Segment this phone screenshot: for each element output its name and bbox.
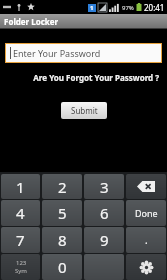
staticText: 8 [58,230,67,250]
button[interactable]: Submit [61,102,107,119]
staticText: 2 [58,177,67,197]
button[interactable]: 2 [42,174,82,199]
button[interactable]: 4 [1,200,40,226]
staticText: 5 [58,203,67,223]
staticText: 1 [90,4,94,12]
button[interactable]: Settings [126,254,166,280]
button[interactable]: 5 [42,200,82,226]
staticText: 6 [100,203,109,223]
staticText: Folder Locker [4,16,59,27]
button[interactable]: 1 [1,174,40,199]
button[interactable]: Space [84,254,124,280]
staticText: Done [135,207,158,219]
staticText: 123 [16,259,27,267]
button[interactable]: Enter Your Password [6,44,161,62]
staticText: 4 [16,203,25,223]
staticText: Sym [15,267,27,275]
button[interactable]: . [126,227,166,253]
staticText: 97% [122,4,134,12]
staticText: Enter Your Password [13,47,101,59]
button[interactable]: 123 [1,254,40,280]
staticText: 9 [100,230,109,250]
staticText: 7 [16,230,25,250]
button[interactable]: Backspace [126,174,166,199]
button[interactable]: 7 [1,227,40,253]
button[interactable]: 9 [84,227,124,253]
staticText: 3 [100,177,109,197]
button[interactable]: Done [126,200,166,226]
staticText: Submit [71,105,98,116]
staticText: 1 [16,177,25,197]
button[interactable]: 8 [42,227,82,253]
staticText: . [145,233,148,247]
staticText: 20:41 [144,2,165,13]
button[interactable]: 0 [42,254,82,280]
button[interactable]: 3 [84,174,124,199]
button[interactable]: Are You Forgot Your Password ? [33,72,159,83]
staticText: 0 [58,257,67,277]
button[interactable]: 6 [84,200,124,226]
